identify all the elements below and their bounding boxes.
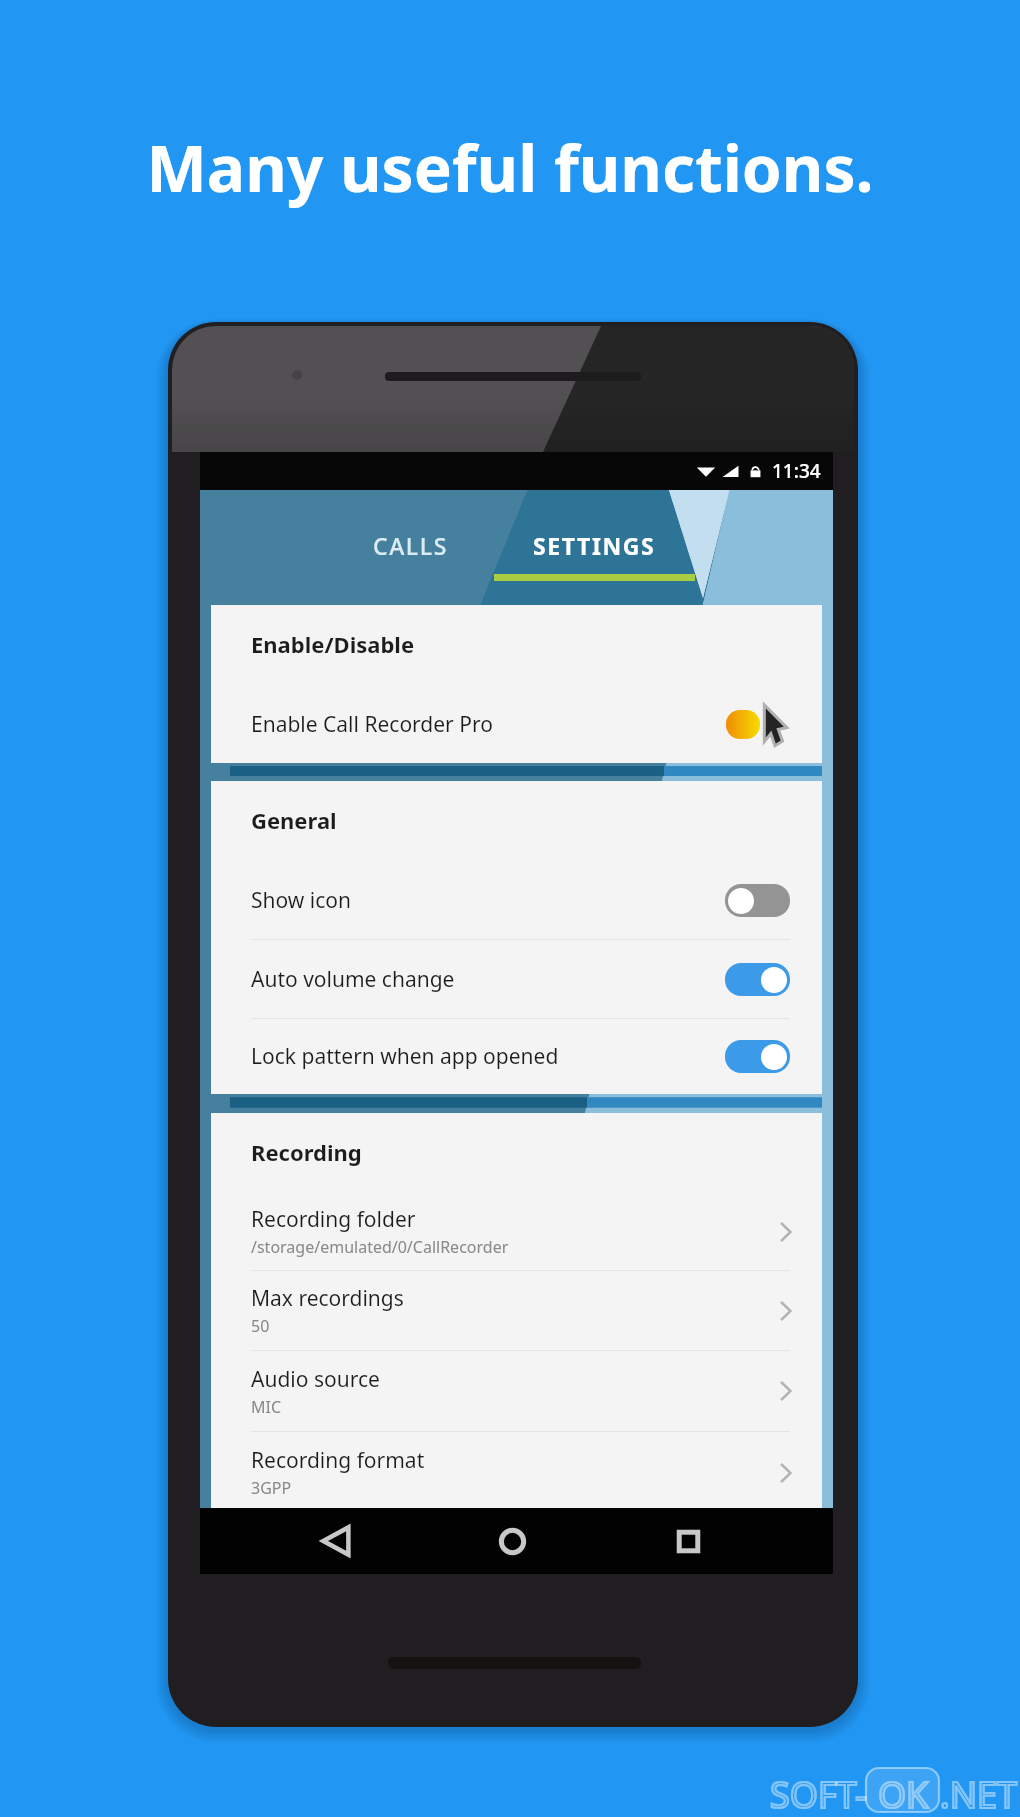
button[interactable]: Auto volume change: [211, 940, 822, 1018]
staticText: 11:34: [772, 458, 821, 484]
button[interactable]: CALLS: [310, 490, 510, 605]
staticText: SOFT-: [770, 1770, 867, 1817]
staticText: .NET: [940, 1770, 1018, 1817]
staticText: Show icon: [251, 886, 351, 915]
staticText: Audio source: [251, 1365, 380, 1394]
button[interactable]: Back: [303, 1508, 369, 1574]
staticText: Recording format: [251, 1446, 425, 1475]
staticText: MIC: [251, 1396, 282, 1418]
staticText: /storage/emulated/0/CallRecorder: [251, 1236, 509, 1258]
button[interactable]: Show icon: [211, 861, 822, 939]
staticText: Enable/Disable: [251, 629, 415, 659]
staticText: OK: [878, 1770, 929, 1817]
staticText: 50: [251, 1315, 270, 1337]
staticText: Enable Call Recorder Pro: [251, 710, 493, 739]
staticText: Lock pattern when app opened: [251, 1042, 559, 1071]
staticText: Recording folder: [251, 1205, 416, 1234]
staticText: 3GPP: [251, 1477, 292, 1499]
button[interactable]: Audio source: [211, 1351, 822, 1431]
button[interactable]: Lock pattern when app opened: [211, 1019, 822, 1094]
staticText: SETTINGS: [533, 530, 656, 561]
staticText: General: [251, 805, 337, 835]
staticText: Recording: [251, 1137, 362, 1167]
button[interactable]: Enable Call Recorder Pro: [211, 685, 822, 763]
staticText: Many useful functions.: [146, 124, 874, 211]
button[interactable]: SETTINGS: [494, 490, 695, 605]
staticText: CALLS: [373, 530, 448, 561]
button[interactable]: Recents: [655, 1508, 721, 1574]
button[interactable]: Max recordings: [211, 1271, 822, 1350]
staticText: Max recordings: [251, 1284, 404, 1313]
button[interactable]: Recording format: [211, 1432, 822, 1513]
button[interactable]: Home: [479, 1508, 545, 1574]
button[interactable]: Recording folder: [211, 1193, 822, 1270]
staticText: Auto volume change: [251, 965, 455, 994]
